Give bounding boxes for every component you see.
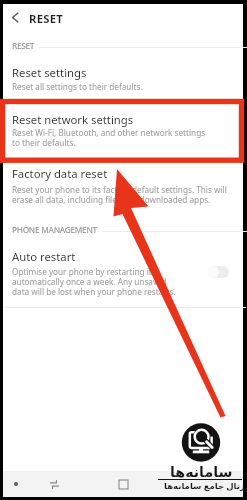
staticText: RESET xyxy=(12,40,35,51)
staticText: پورتال جامع سامانه‌ها xyxy=(164,480,247,492)
button[interactable]: Home xyxy=(113,471,134,497)
button[interactable]: Factory data reset xyxy=(12,166,108,181)
staticText: PHONE MANAGEMENT xyxy=(12,224,97,235)
staticText: RESET xyxy=(29,11,64,26)
button[interactable]: Auto restart toggle xyxy=(204,263,232,281)
staticText: Reset all settings to their defaults. xyxy=(12,81,143,92)
staticText: Reset your phone to its factory default … xyxy=(12,184,227,205)
button[interactable]: Reset settings xyxy=(12,65,87,80)
button[interactable]: Reset network settings xyxy=(12,112,134,127)
button[interactable]: Back xyxy=(44,471,65,497)
button[interactable]: Back xyxy=(5,6,25,28)
staticText: Optimise your phone by restarting it aut… xyxy=(12,266,176,297)
button[interactable]: Recents xyxy=(5,471,26,497)
staticText: سامانه‌ها xyxy=(170,464,233,481)
staticText: Reset Wi-Fi, Bluetooth, and other networ… xyxy=(12,127,206,148)
button[interactable]: Auto restart xyxy=(12,249,76,264)
